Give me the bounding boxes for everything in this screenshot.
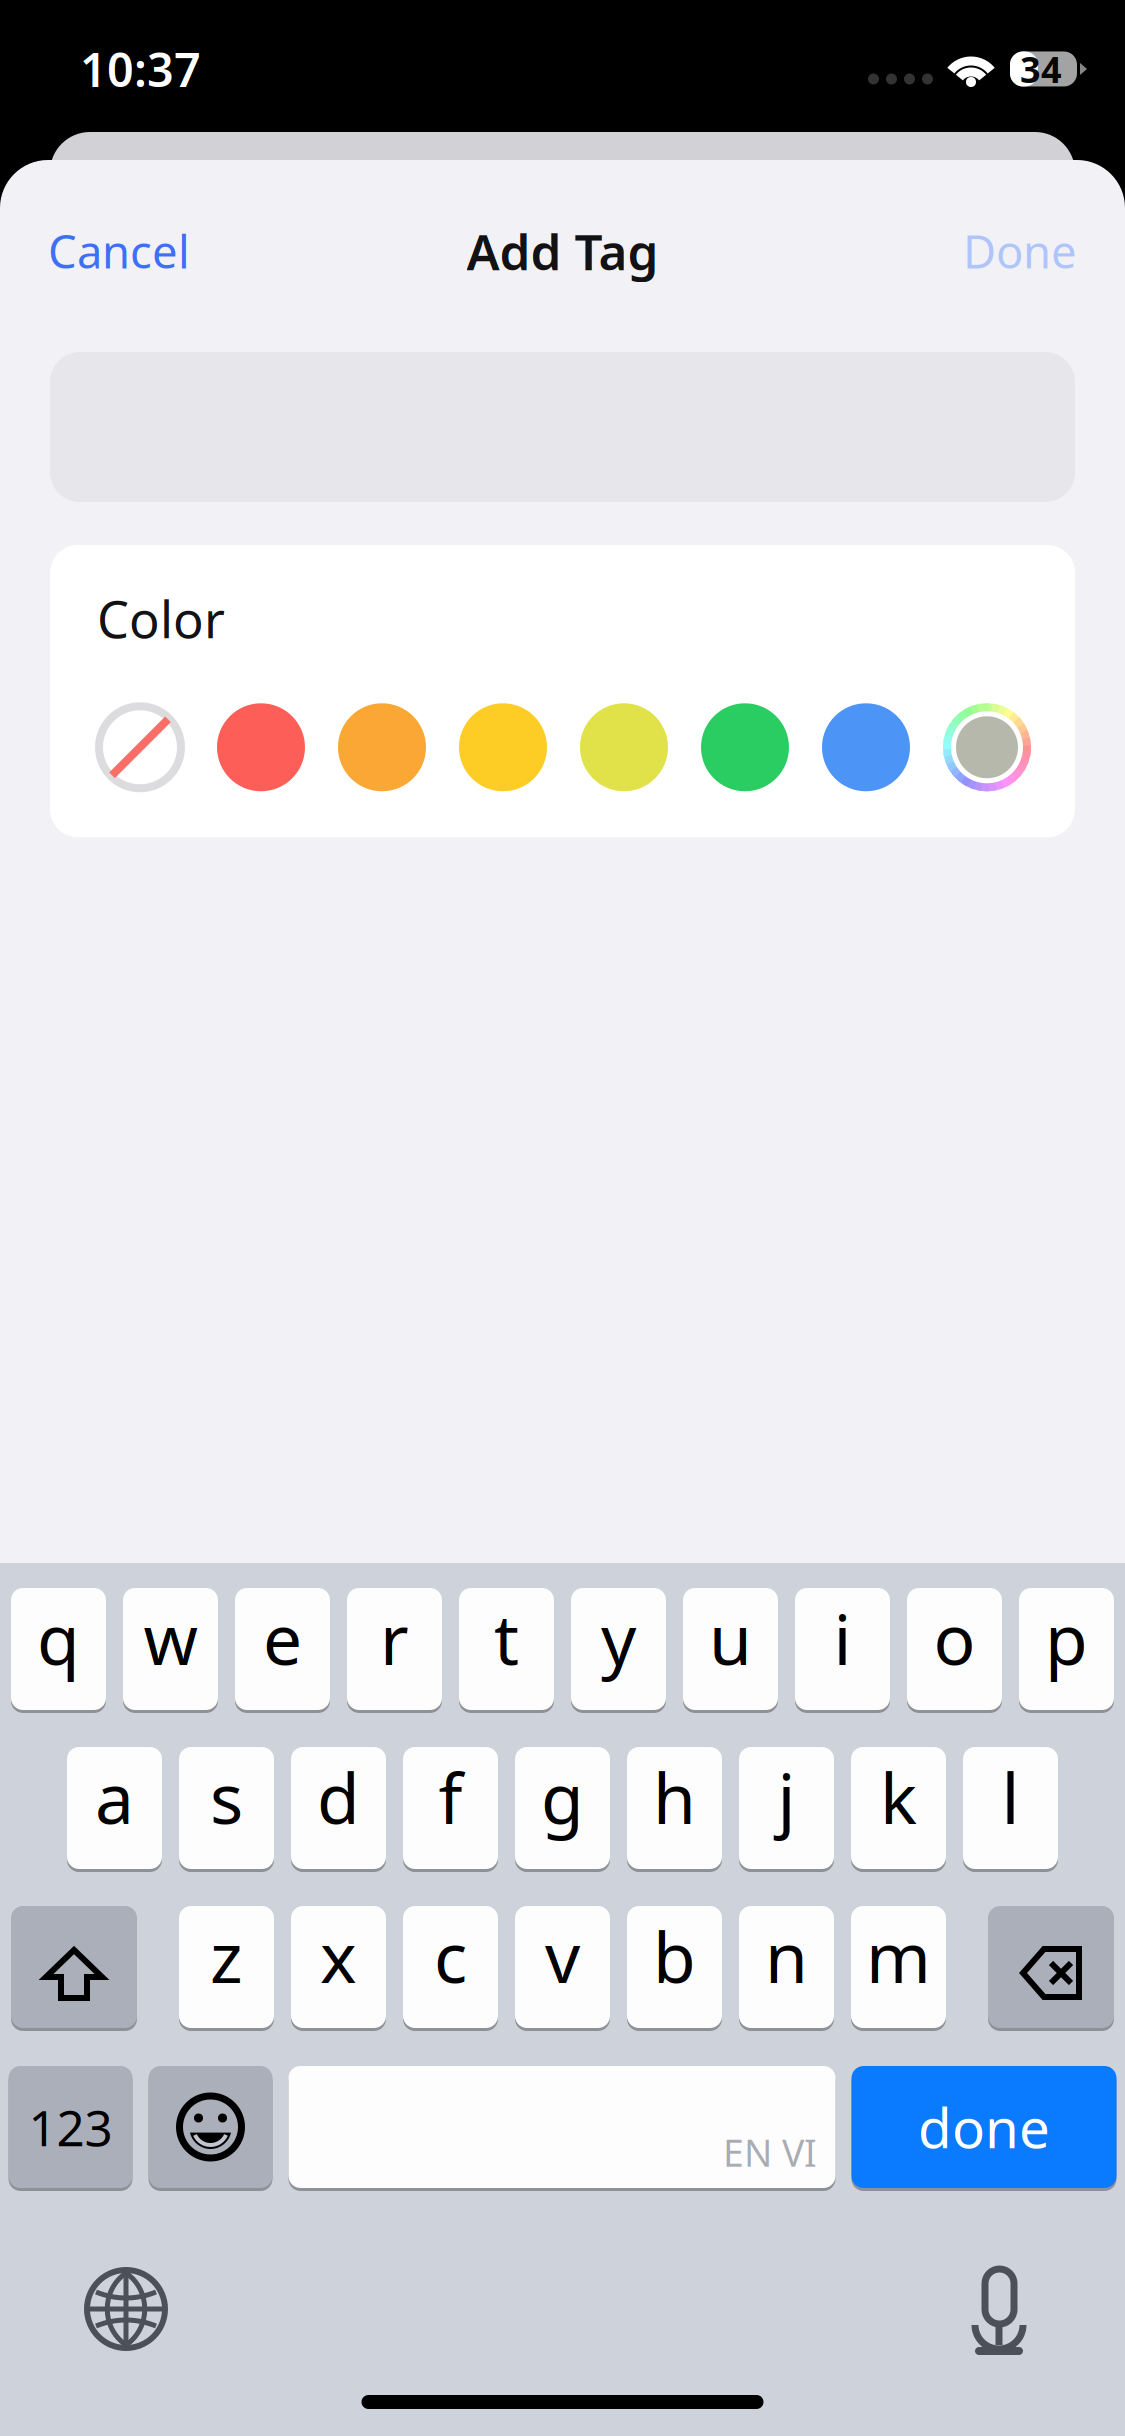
staticText: m xyxy=(866,1910,931,2002)
staticText: d xyxy=(317,1751,360,1843)
staticText: b xyxy=(653,1910,696,2002)
button[interactable]: Lime xyxy=(580,703,668,791)
button[interactable]: k xyxy=(851,1745,946,1871)
button[interactable]: s xyxy=(179,1745,274,1871)
button[interactable]: Done xyxy=(955,210,1085,302)
button[interactable]: p xyxy=(1019,1586,1114,1712)
staticText: j xyxy=(777,1751,795,1843)
staticText: p xyxy=(1045,1592,1088,1684)
staticText: w xyxy=(143,1592,197,1684)
staticText: Add Tag xyxy=(466,218,658,284)
staticText: t xyxy=(494,1592,519,1684)
staticText: y xyxy=(601,1592,636,1684)
staticText: done xyxy=(918,2091,1050,2163)
button[interactable]: Emoji xyxy=(148,2064,272,2190)
staticText: 34 xyxy=(1020,45,1062,93)
button[interactable]: d xyxy=(291,1745,386,1871)
button[interactable]: f xyxy=(403,1745,498,1871)
button[interactable]: No colour xyxy=(96,703,184,791)
button[interactable]: Next keyboard xyxy=(78,2269,174,2359)
button[interactable]: i xyxy=(795,1586,890,1712)
button[interactable]: c xyxy=(403,1904,498,2030)
button[interactable]: l xyxy=(963,1745,1058,1871)
button[interactable]: x xyxy=(291,1904,386,2030)
button[interactable]: Delete xyxy=(988,1904,1114,2030)
button[interactable]: m xyxy=(851,1904,946,2030)
staticText: c xyxy=(434,1910,467,2002)
staticText: e xyxy=(263,1592,302,1684)
button[interactable]: u xyxy=(683,1586,778,1712)
button[interactable]: q xyxy=(11,1586,106,1712)
staticText: x xyxy=(320,1910,357,2002)
button[interactable]: b xyxy=(627,1904,722,2030)
staticText: 10:37 xyxy=(80,38,201,100)
button[interactable]: a xyxy=(67,1745,162,1871)
staticText: Color xyxy=(97,585,225,652)
button[interactable]: Red xyxy=(217,703,305,791)
staticText: z xyxy=(210,1910,243,2002)
button[interactable]: Cancel xyxy=(40,210,198,302)
staticText: a xyxy=(95,1751,134,1843)
button[interactable]: Green xyxy=(701,703,789,791)
button[interactable]: Blue xyxy=(822,703,910,791)
button[interactable]: Yellow xyxy=(459,703,547,791)
staticText: Done xyxy=(963,221,1077,281)
button[interactable]: Dictation xyxy=(951,2269,1047,2359)
button[interactable]: g xyxy=(515,1745,610,1871)
button[interactable]: w xyxy=(123,1586,218,1712)
button[interactable]: Space xyxy=(288,2064,835,2190)
button[interactable]: Done xyxy=(851,2064,1116,2190)
button[interactable]: r xyxy=(347,1586,442,1712)
staticText: h xyxy=(653,1751,696,1843)
staticText: g xyxy=(541,1751,584,1843)
staticText: Cancel xyxy=(48,221,190,281)
staticText: EN VI xyxy=(723,2127,817,2177)
button[interactable]: h xyxy=(627,1745,722,1871)
button[interactable]: Orange xyxy=(338,703,426,791)
button[interactable]: n xyxy=(739,1904,834,2030)
staticText: s xyxy=(210,1751,243,1843)
button[interactable]: Numbers xyxy=(8,2064,132,2190)
staticText: o xyxy=(933,1592,975,1684)
staticText: f xyxy=(438,1751,462,1843)
staticText: 123 xyxy=(28,2094,112,2160)
button[interactable]: v xyxy=(515,1904,610,2030)
button[interactable]: j xyxy=(739,1745,834,1871)
staticText: v xyxy=(545,1910,580,2002)
staticText: r xyxy=(380,1592,409,1684)
button[interactable]: e xyxy=(235,1586,330,1712)
button[interactable]: y xyxy=(571,1586,666,1712)
staticText: k xyxy=(880,1751,917,1843)
button[interactable]: t xyxy=(459,1586,554,1712)
button[interactable]: z xyxy=(179,1904,274,2030)
button[interactable]: Custom colour xyxy=(943,703,1031,791)
staticText: q xyxy=(37,1592,80,1684)
button[interactable]: Shift xyxy=(11,1904,137,2030)
staticText: u xyxy=(709,1592,752,1684)
staticText: n xyxy=(765,1910,808,2002)
staticText: l xyxy=(1001,1751,1019,1843)
button[interactable]: o xyxy=(907,1586,1002,1712)
staticText: i xyxy=(833,1592,851,1684)
